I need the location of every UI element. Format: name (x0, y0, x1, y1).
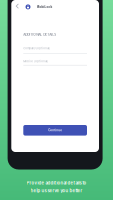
button[interactable]: Continue (23, 125, 87, 136)
staticText: MobiLock (36, 5, 52, 9)
staticText: Mobile (optional) (23, 60, 48, 63)
staticText: ADDITIONAL DETAILS (23, 33, 56, 37)
button[interactable]: Back (13, 0, 22, 11)
staticText: Company (optional) (23, 47, 50, 50)
staticText: Continue (48, 128, 62, 132)
staticText: help us serve you better (30, 188, 82, 193)
staticText: Provide additional details to (26, 180, 86, 186)
